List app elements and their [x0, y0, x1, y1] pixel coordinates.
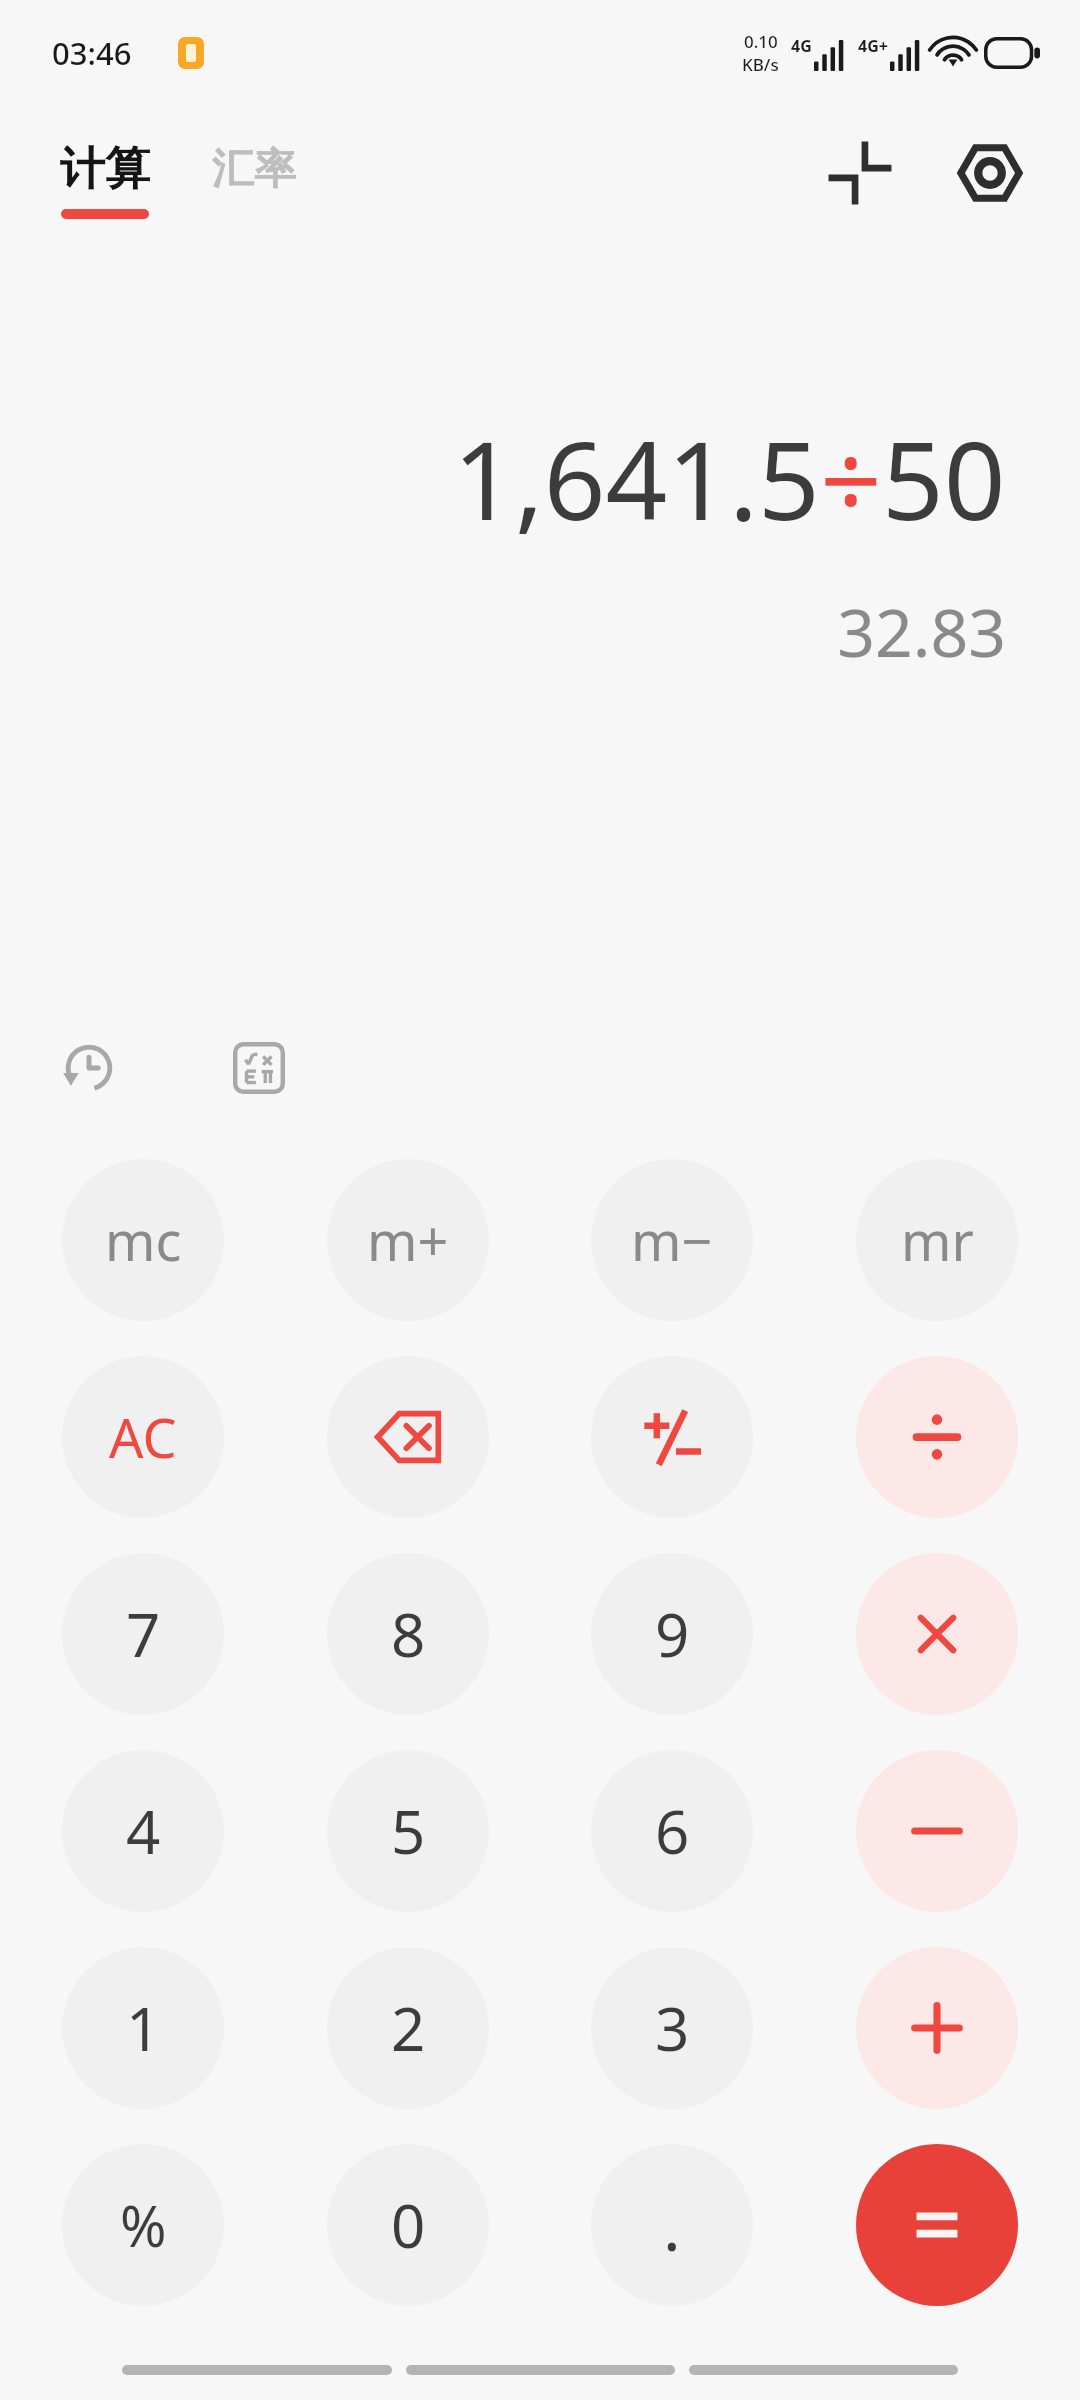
button[interactable]: mr [856, 1159, 1018, 1321]
button[interactable]: Toggle sign [591, 1356, 753, 1518]
staticText: % [120, 2187, 167, 2263]
button[interactable]: % [62, 2144, 224, 2306]
button[interactable]: Equals [856, 2144, 1018, 2306]
staticText: 5 [391, 1790, 426, 1872]
staticText: m+ [367, 1203, 449, 1277]
button[interactable]: Navigation [689, 2365, 958, 2375]
button[interactable]: 4 [62, 1750, 224, 1912]
staticText: 计算 [60, 141, 150, 198]
staticText: 4G+ [858, 35, 888, 57]
button[interactable]: History [44, 1023, 134, 1113]
button[interactable]: 汇率 [206, 143, 302, 217]
staticText: 1,641.5 [453, 405, 820, 552]
staticText: 4G [791, 35, 812, 57]
button[interactable]: 9 [591, 1553, 753, 1715]
button[interactable]: 5 [327, 1750, 489, 1912]
button[interactable]: Subtract [856, 1750, 1018, 1912]
button[interactable]: Resize window [812, 125, 908, 221]
staticText: 6 [655, 1790, 690, 1872]
button[interactable]: Add [856, 1947, 1018, 2109]
button[interactable]: mc [62, 1159, 224, 1321]
button[interactable]: 6 [591, 1750, 753, 1912]
staticText: 32.83 [837, 586, 1006, 676]
button[interactable]: 2 [327, 1947, 489, 2109]
button[interactable]: Divide [856, 1356, 1018, 1518]
button[interactable]: AC [62, 1356, 224, 1518]
staticText: mr [901, 1203, 974, 1277]
button[interactable]: Settings [942, 125, 1038, 221]
staticText: 3 [655, 1987, 690, 2069]
staticText: 8 [391, 1593, 426, 1675]
staticText: ÷ [820, 405, 882, 552]
staticText: 7 [126, 1593, 161, 1675]
staticText: 1 [126, 1987, 161, 2069]
staticText: . [663, 2180, 681, 2270]
button[interactable]: Navigation [406, 2365, 675, 2375]
button[interactable]: 0 [327, 2144, 489, 2306]
staticText: 2 [391, 1987, 426, 2069]
staticText: 9 [655, 1593, 690, 1675]
button[interactable]: Navigation [122, 2365, 392, 2375]
button[interactable]: 3 [591, 1947, 753, 2109]
button[interactable]: m+ [327, 1159, 489, 1321]
staticText: 4 [126, 1790, 161, 1872]
staticText: mc [105, 1203, 182, 1277]
staticText: 汇率 [212, 143, 296, 196]
button[interactable]: 7 [62, 1553, 224, 1715]
button[interactable]: Scientific mode [214, 1023, 304, 1113]
staticText: 50 [882, 405, 1006, 552]
staticText: m− [631, 1203, 713, 1277]
button[interactable]: 8 [327, 1553, 489, 1715]
button[interactable]: Multiply [856, 1553, 1018, 1715]
staticText: 0 [391, 2184, 426, 2266]
staticText: 0.10 [744, 30, 778, 53]
button[interactable]: m− [591, 1159, 753, 1321]
staticText: AC [109, 1400, 177, 1474]
button[interactable]: Backspace [327, 1356, 489, 1518]
button[interactable]: 1 [62, 1947, 224, 2109]
staticText: 03:46 [52, 32, 132, 74]
button[interactable]: 计算 [54, 137, 156, 223]
staticText: KB/s [742, 53, 779, 76]
button[interactable]: . [591, 2144, 753, 2306]
